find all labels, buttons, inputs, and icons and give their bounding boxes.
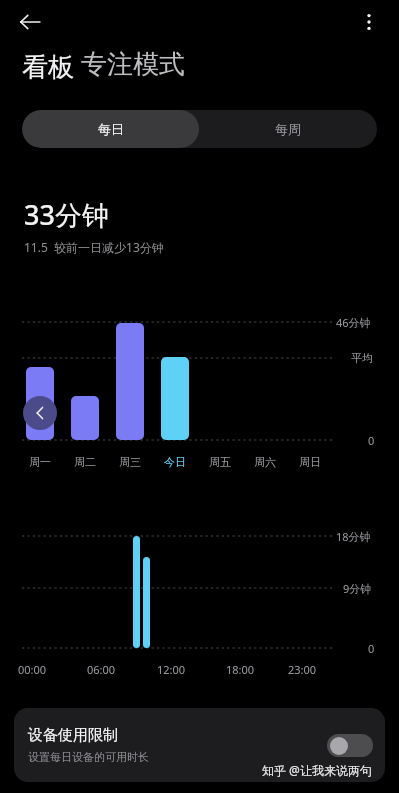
- staticText: 平均: [351, 351, 373, 365]
- staticText: 46分钟: [336, 315, 371, 330]
- staticText: 今日: [164, 455, 186, 469]
- staticText: 知乎 @让我来说两句: [262, 762, 372, 778]
- staticText: 设备使用限制: [28, 726, 118, 745]
- staticText: 12:00: [157, 662, 186, 677]
- button[interactable]: More options: [349, 2, 389, 42]
- button[interactable]: 周六: [247, 452, 283, 472]
- button[interactable]: 周日: [292, 452, 328, 472]
- staticText: 周日: [299, 455, 321, 469]
- staticText: 每日: [98, 121, 124, 137]
- staticText: 周六: [254, 455, 276, 469]
- staticText: 33分钟: [24, 196, 109, 233]
- staticText: 周三: [119, 455, 141, 469]
- staticText: 0: [368, 641, 375, 656]
- button[interactable]: Previous: [23, 396, 57, 430]
- staticText: 看板: [22, 48, 81, 84]
- button[interactable]: 周二: [67, 452, 103, 472]
- staticText: 18分钟: [336, 529, 371, 544]
- staticText: 周一: [29, 455, 51, 469]
- staticText: 周五: [209, 455, 231, 469]
- staticText: 11.5 较前一日减少13分钟: [24, 239, 164, 255]
- staticText: 周二: [74, 455, 96, 469]
- button[interactable]: 周一: [22, 452, 58, 472]
- staticText: 0: [368, 433, 375, 448]
- button[interactable]: 今日: [157, 452, 193, 472]
- button[interactable]: 每周: [199, 110, 377, 148]
- staticText: 23:00: [288, 662, 317, 677]
- staticText: 专注模式: [81, 48, 185, 81]
- staticText: 06:00: [87, 662, 116, 677]
- button[interactable]: 周五: [202, 452, 238, 472]
- staticText: 00:00: [18, 662, 47, 677]
- button[interactable]: 周三: [112, 452, 148, 472]
- staticText: 每周: [275, 121, 301, 137]
- button[interactable]: 设备使用限制 toggle: [327, 734, 373, 757]
- staticText: 18:00: [226, 662, 255, 677]
- staticText: 9分钟: [343, 581, 372, 596]
- button[interactable]: 每日: [22, 110, 199, 148]
- button[interactable]: Back: [10, 2, 50, 42]
- staticText: 设置每日设备的可用时长: [28, 750, 149, 764]
- button[interactable]: 设备使用限制: [14, 708, 385, 782]
